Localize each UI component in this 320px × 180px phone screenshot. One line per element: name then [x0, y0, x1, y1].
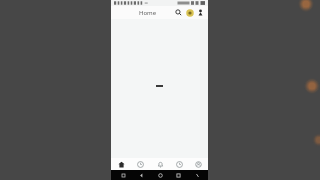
button[interactable]: Recents — [171, 170, 185, 180]
button[interactable]: Profile — [195, 7, 206, 18]
button[interactable]: Library — [170, 158, 188, 170]
button[interactable]: Profile — [189, 158, 207, 170]
button[interactable]: Back — [134, 170, 148, 180]
button[interactable]: Notifications — [151, 158, 169, 170]
button[interactable]: Account — [184, 7, 195, 18]
button[interactable]: Screenshot — [116, 170, 130, 180]
button[interactable]: Home — [153, 170, 167, 180]
button[interactable]: Search — [173, 7, 184, 18]
button[interactable]: Menu — [190, 170, 204, 180]
button[interactable]: Explore — [131, 158, 149, 170]
staticText: Home — [139, 9, 157, 17]
button[interactable]: Home — [112, 158, 130, 170]
